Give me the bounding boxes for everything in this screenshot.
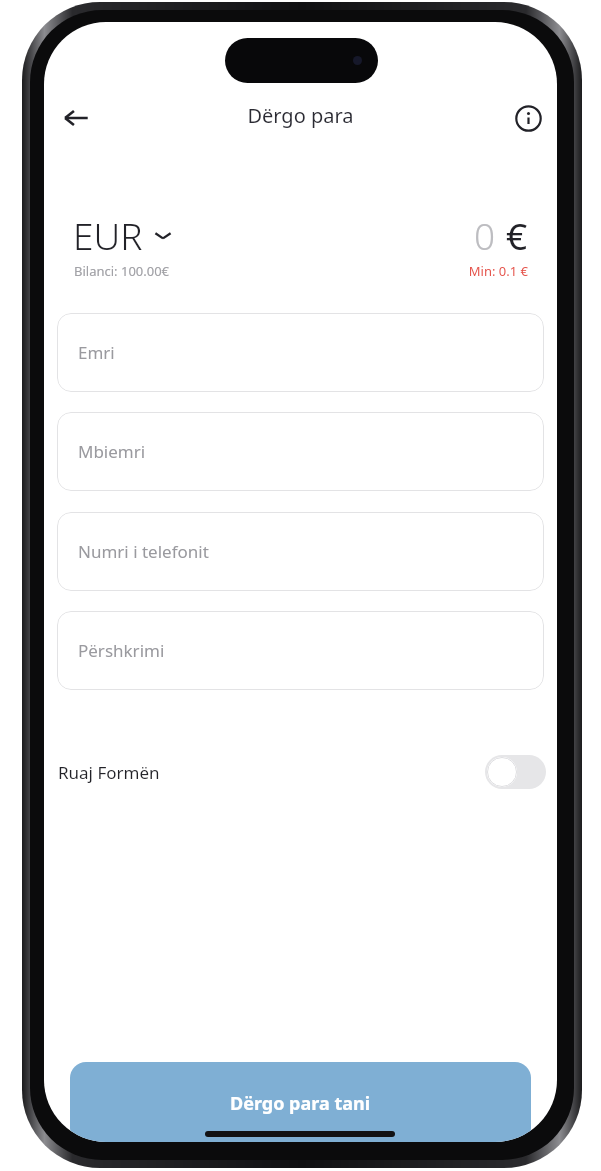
button[interactable]: Dërgo para tani — [70, 1062, 531, 1142]
button[interactable]: Ruaj Formën — [55, 734, 546, 810]
staticText: Numri i telefonit — [78, 540, 209, 563]
staticText: Dërgo para — [44, 102, 557, 129]
staticText: Dërgo para tani — [230, 1091, 371, 1116]
button[interactable]: Emri — [57, 313, 544, 392]
button[interactable]: Mbiemri — [57, 412, 544, 491]
button[interactable]: Përshkrimi — [57, 611, 544, 690]
button[interactable]: Numri i telefonit — [57, 512, 544, 591]
button[interactable]: EUR — [73, 207, 173, 263]
staticText: 0 — [474, 210, 496, 260]
staticText: € — [506, 210, 528, 260]
staticText: Bilanci: 100.00€ — [74, 262, 170, 280]
button[interactable]: Information — [504, 94, 552, 142]
staticText: Përshkrimi — [78, 639, 165, 662]
staticText: Min: 0.1 € — [344, 262, 528, 280]
button[interactable]: Back — [52, 94, 100, 142]
staticText: Emri — [78, 341, 115, 364]
staticText: Ruaj Formën — [58, 761, 160, 784]
staticText: EUR — [73, 210, 143, 260]
staticText: Mbiemri — [78, 440, 146, 463]
